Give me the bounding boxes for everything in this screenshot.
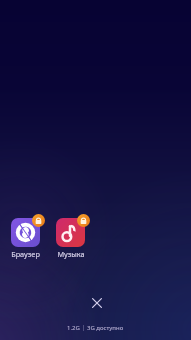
button[interactable] [56,218,85,247]
button[interactable] [11,218,40,247]
staticText: Музыка [57,249,85,259]
button[interactable]: Close all apps [82,288,111,317]
staticText: 3G доступно [87,324,124,332]
staticText: Браузер [11,249,40,259]
staticText: 1.2G [67,324,80,332]
